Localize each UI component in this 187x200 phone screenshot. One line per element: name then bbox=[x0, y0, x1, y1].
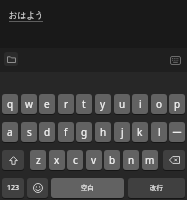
staticText: b bbox=[109, 153, 116, 167]
button[interactable]: e bbox=[39, 94, 55, 114]
button[interactable]: l bbox=[151, 122, 167, 142]
button[interactable]: b bbox=[104, 150, 120, 170]
button[interactable] bbox=[4, 52, 18, 66]
button[interactable]: a bbox=[2, 122, 18, 142]
staticText: x bbox=[54, 153, 60, 167]
button[interactable] bbox=[163, 150, 185, 170]
button[interactable]: s bbox=[21, 122, 37, 142]
staticText: m bbox=[145, 153, 155, 167]
staticText: おはよう bbox=[9, 10, 44, 21]
button[interactable]: o bbox=[151, 94, 167, 114]
button[interactable]: r bbox=[58, 94, 74, 114]
staticText: f bbox=[64, 125, 68, 139]
staticText: o bbox=[156, 97, 163, 111]
button[interactable]: g bbox=[76, 122, 92, 142]
staticText: a bbox=[7, 125, 13, 139]
staticText: j bbox=[121, 125, 124, 139]
staticText: t bbox=[82, 97, 86, 111]
button[interactable]: i bbox=[132, 94, 148, 114]
button[interactable]: d bbox=[39, 122, 55, 142]
staticText: 123 bbox=[7, 183, 20, 193]
button[interactable]: p bbox=[169, 94, 185, 114]
button[interactable] bbox=[168, 54, 183, 66]
staticText: u bbox=[119, 97, 126, 111]
staticText: n bbox=[128, 153, 135, 167]
staticText: r bbox=[64, 97, 69, 111]
button[interactable]: 改行 bbox=[128, 178, 185, 198]
button[interactable]: c bbox=[67, 150, 83, 170]
staticText: w bbox=[25, 97, 33, 111]
button[interactable]: k bbox=[132, 122, 148, 142]
staticText: k bbox=[137, 125, 143, 139]
staticText: d bbox=[44, 125, 51, 139]
button[interactable]: 123 bbox=[2, 178, 24, 198]
button[interactable]: n bbox=[123, 150, 139, 170]
staticText: y bbox=[100, 97, 106, 111]
staticText: g bbox=[81, 125, 88, 139]
button[interactable]: q bbox=[2, 94, 18, 114]
staticText: h bbox=[100, 125, 107, 139]
button[interactable]: f bbox=[58, 122, 74, 142]
staticText: p bbox=[174, 97, 181, 111]
button[interactable]: j bbox=[114, 122, 130, 142]
button[interactable] bbox=[27, 178, 48, 198]
button[interactable]: v bbox=[86, 150, 102, 170]
button[interactable]: z bbox=[30, 150, 46, 170]
staticText: s bbox=[27, 125, 32, 139]
staticText: 空白 bbox=[81, 184, 94, 192]
button[interactable]: h bbox=[95, 122, 111, 142]
button[interactable] bbox=[2, 150, 24, 170]
staticText: e bbox=[44, 97, 50, 111]
button[interactable]: x bbox=[49, 150, 65, 170]
staticText: c bbox=[73, 153, 78, 167]
staticText: i bbox=[139, 97, 142, 111]
button[interactable]: ー bbox=[169, 122, 185, 142]
button[interactable]: m bbox=[142, 150, 158, 170]
button[interactable]: y bbox=[95, 94, 111, 114]
button[interactable]: t bbox=[76, 94, 92, 114]
button[interactable]: u bbox=[114, 94, 130, 114]
staticText: q bbox=[7, 97, 14, 111]
staticText: 改行 bbox=[150, 184, 163, 192]
button[interactable]: 空白 bbox=[51, 178, 124, 198]
staticText: z bbox=[36, 153, 41, 167]
staticText: ー bbox=[172, 126, 182, 139]
staticText: v bbox=[91, 153, 97, 167]
staticText: l bbox=[158, 125, 161, 139]
button[interactable]: w bbox=[21, 94, 37, 114]
